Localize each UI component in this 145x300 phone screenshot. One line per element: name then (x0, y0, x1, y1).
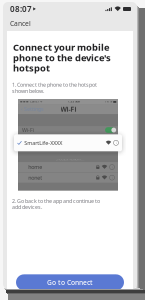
staticText: Wi-Fi (60, 105, 76, 113)
button[interactable]: Go to Connect (16, 274, 124, 290)
staticText: phone to the device's (13, 51, 111, 64)
staticText: nonet (28, 174, 42, 181)
staticText: Go to Connect (47, 278, 93, 287)
staticText: Connect your mobile (13, 41, 110, 53)
button[interactable]: Cancel (3, 16, 42, 31)
staticText: ▬▬▬ Carrier ᯤ (20, 100, 42, 103)
staticText: SmartLife-XXXX (24, 139, 62, 146)
staticText: shown below. (12, 87, 44, 94)
staticText: 7:55 AM (67, 100, 79, 103)
staticText: home (28, 163, 42, 171)
staticText: 2. Go back to the app and continue to (12, 197, 100, 204)
staticText: Wi-Fi (22, 126, 34, 134)
staticText: 1. Connect the phone to the hotspot (12, 81, 97, 88)
staticText: hotspot (13, 62, 50, 74)
staticText: 08:07 (10, 4, 32, 14)
staticText: 74 % ▮▮▮ (105, 100, 116, 103)
staticText: Cancel (10, 19, 31, 28)
staticText: ‹ Settings (21, 105, 44, 113)
staticText: CHOOSE A NETWORK... (55, 158, 84, 161)
staticText: add devices. (12, 203, 42, 210)
